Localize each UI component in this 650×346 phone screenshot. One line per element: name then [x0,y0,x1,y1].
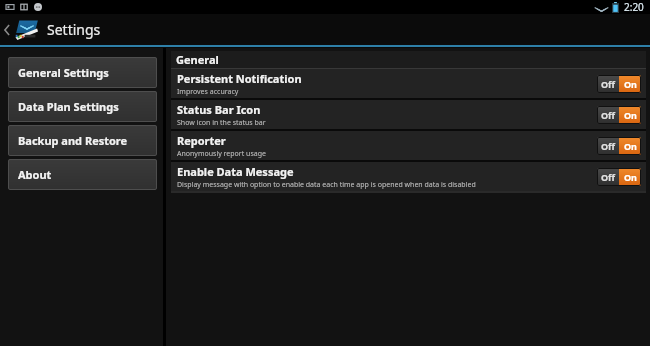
button[interactable]: About [8,159,157,190]
staticText: On [624,78,637,90]
button[interactable]: Data Plan Settings [8,91,157,122]
button[interactable]: Reporter [171,131,646,160]
staticText: Off [601,140,616,152]
button[interactable]: General Settings [8,57,157,88]
staticText: Persistent Notification [177,71,302,86]
button[interactable]: Toggle, On [597,137,641,155]
button[interactable]: Backup and Restore [8,125,157,156]
button[interactable]: Persistent Notification [171,69,646,98]
staticText: General [176,52,219,67]
staticText: Improves accuracy [177,87,239,97]
button[interactable]: Toggle, On [597,106,641,124]
button[interactable]: Toggle, On [597,75,641,93]
staticText: Enable Data Message [177,164,294,179]
staticText: Status Bar Icon [177,102,261,117]
staticText: On [624,109,637,121]
staticText: On [624,171,637,183]
staticText: 2:20 [624,0,644,14]
staticText: Display message with option to enable da… [177,180,476,190]
staticText: Reporter [177,133,226,148]
staticText: Settings [47,20,101,39]
button[interactable]: Status Bar Icon [171,100,646,129]
button[interactable]: Toggle, On [597,168,641,186]
staticText: Data Plan Settings [18,99,119,114]
button[interactable]: Enable Data Message [171,162,646,191]
staticText: Backup and Restore [18,133,128,148]
staticText: About [18,167,52,182]
staticText: Show icon in the status bar [177,118,266,128]
staticText: General Settings [18,65,109,80]
button[interactable]: Back [0,14,14,45]
staticText: Off [601,171,616,183]
staticText: Anonymously report usage [177,149,266,159]
staticText: On [624,140,637,152]
button[interactable]: App icon [14,17,40,43]
staticText: Off [601,109,616,121]
staticText: Off [601,78,616,90]
